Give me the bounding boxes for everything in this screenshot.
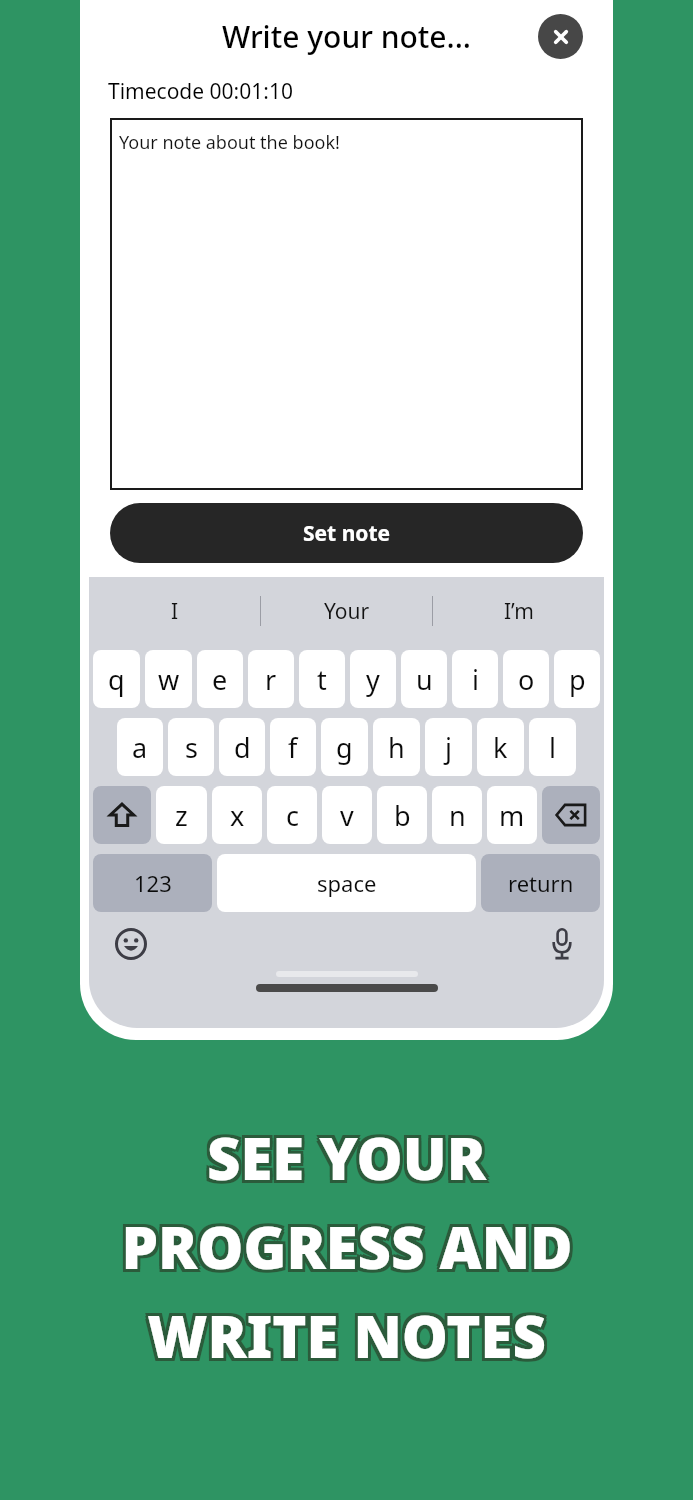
button[interactable]: I — [89, 577, 260, 645]
button[interactable]: space — [217, 854, 476, 912]
staticText: w — [158, 661, 180, 698]
button[interactable]: m — [487, 786, 537, 844]
staticText: PROGRESS AND — [124, 1210, 576, 1289]
staticText: t — [317, 661, 327, 698]
staticText: SEE YOUR — [207, 1118, 486, 1197]
button[interactable]: 123 — [93, 854, 212, 912]
staticText: p — [569, 661, 586, 698]
staticText: o — [518, 661, 535, 698]
button[interactable]: v — [322, 786, 372, 844]
button[interactable]: Dictation — [542, 924, 582, 964]
staticText: WRITE NOTES — [144, 1299, 543, 1378]
staticText: SEE YOUR — [210, 1121, 489, 1200]
staticText: Timecode 00:01:10 — [108, 77, 293, 106]
staticText: SEE YOUR — [210, 1115, 489, 1194]
staticText: 123 — [134, 868, 172, 898]
button[interactable]: k — [477, 718, 524, 776]
button[interactable]: Close — [538, 14, 583, 59]
staticText: SEE YOUR — [207, 1115, 486, 1194]
staticText: I’m — [504, 597, 534, 626]
staticText: u — [416, 661, 433, 698]
staticText: n — [449, 797, 466, 834]
button[interactable]: a — [117, 718, 163, 776]
staticText: Your note about the book! — [119, 130, 340, 155]
button[interactable]: r — [248, 650, 294, 708]
button[interactable]: p — [554, 650, 600, 708]
button[interactable]: e — [197, 650, 243, 708]
button[interactable]: z — [156, 786, 207, 844]
button[interactable]: b — [377, 786, 427, 844]
staticText: Your — [324, 597, 370, 626]
staticText: space — [317, 868, 377, 898]
staticText: SEE YOUR — [204, 1121, 483, 1200]
staticText: z — [175, 797, 188, 834]
staticText: return — [508, 868, 574, 898]
button[interactable]: Emoji — [111, 924, 151, 964]
staticText: d — [234, 729, 251, 766]
staticText: Set note — [303, 519, 391, 548]
staticText: PROGRESS AND — [121, 1210, 573, 1289]
button[interactable]: Your note about the book! — [110, 118, 583, 490]
button[interactable]: c — [267, 786, 317, 844]
button[interactable]: u — [401, 650, 447, 708]
staticText: y — [366, 661, 380, 698]
staticText: PROGRESS AND — [118, 1204, 570, 1283]
staticText: WRITE NOTES — [147, 1293, 546, 1372]
button[interactable]: f — [270, 718, 316, 776]
button[interactable]: d — [219, 718, 265, 776]
button[interactable]: i — [452, 650, 498, 708]
staticText: b — [394, 797, 411, 834]
staticText: v — [340, 797, 354, 834]
staticText: PROGRESS AND — [118, 1207, 570, 1286]
staticText: s — [185, 729, 198, 766]
staticText: WRITE NOTES — [147, 1299, 546, 1378]
staticText: f — [288, 729, 298, 766]
staticText: k — [493, 729, 508, 766]
staticText: r — [265, 661, 277, 698]
staticText: SEE YOUR — [210, 1118, 489, 1197]
staticText: WRITE NOTES — [150, 1299, 549, 1378]
button[interactable]: s — [168, 718, 214, 776]
staticText: m — [499, 797, 525, 834]
staticText: WRITE NOTES — [144, 1293, 543, 1372]
staticText: a — [132, 729, 148, 766]
button[interactable]: Backspace — [542, 786, 600, 844]
staticText: PROGRESS AND — [121, 1207, 573, 1286]
staticText: g — [336, 729, 353, 766]
button[interactable]: n — [432, 786, 482, 844]
button[interactable]: h — [373, 718, 420, 776]
staticText: PROGRESS AND — [124, 1207, 576, 1286]
staticText: i — [472, 661, 479, 698]
staticText: PROGRESS AND — [118, 1210, 570, 1289]
staticText: PROGRESS AND — [121, 1204, 573, 1283]
button[interactable]: j — [425, 718, 472, 776]
staticText: WRITE NOTES — [150, 1293, 549, 1372]
button[interactable]: Your — [261, 577, 432, 645]
button[interactable]: return — [481, 854, 600, 912]
staticText: c — [286, 797, 299, 834]
button[interactable]: w — [145, 650, 192, 708]
staticText: x — [230, 797, 245, 834]
staticText: h — [388, 729, 405, 766]
staticText: SEE YOUR — [204, 1118, 483, 1197]
staticText: Write your note... — [222, 16, 472, 57]
button[interactable]: Shift — [93, 786, 151, 844]
button[interactable]: x — [212, 786, 262, 844]
button[interactable]: I’m — [433, 577, 604, 645]
button[interactable]: g — [321, 718, 368, 776]
staticText: SEE YOUR — [204, 1115, 483, 1194]
staticText: PROGRESS AND — [124, 1204, 576, 1283]
button[interactable]: o — [503, 650, 549, 708]
button[interactable]: l — [529, 718, 576, 776]
staticText: WRITE NOTES — [144, 1296, 543, 1375]
button[interactable]: Set note — [110, 503, 583, 563]
button[interactable]: q — [93, 650, 140, 708]
staticText: WRITE NOTES — [147, 1296, 546, 1375]
staticText: j — [445, 729, 452, 766]
button[interactable]: t — [299, 650, 345, 708]
staticText: e — [212, 661, 228, 698]
staticText: I — [171, 597, 179, 626]
button[interactable]: y — [350, 650, 396, 708]
staticText: l — [549, 729, 556, 766]
staticText: SEE YOUR — [207, 1121, 486, 1200]
